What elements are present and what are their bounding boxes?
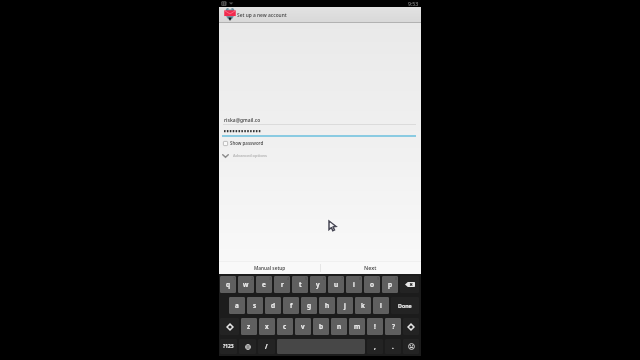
button[interactable]: a <box>229 297 245 314</box>
button[interactable]: g <box>301 297 317 314</box>
button[interactable]: e <box>256 276 272 293</box>
staticText: t <box>299 280 302 289</box>
button[interactable]: n <box>331 318 347 335</box>
staticText: n <box>337 322 342 331</box>
button[interactable]: b <box>313 318 329 335</box>
button[interactable]: . <box>385 339 401 354</box>
staticText: . <box>392 342 394 351</box>
staticText: ? <box>392 322 395 331</box>
staticText: 2 <box>251 276 254 281</box>
staticText: u <box>334 280 339 289</box>
staticText: z <box>247 322 251 331</box>
staticText: q <box>226 280 231 289</box>
staticText: 8 <box>359 276 362 281</box>
button[interactable]: c <box>277 318 293 335</box>
button[interactable]: j <box>337 297 353 314</box>
button[interactable]: Shift <box>220 318 239 335</box>
button[interactable]: d <box>265 297 281 314</box>
staticText: / <box>265 342 268 351</box>
button[interactable]: ? <box>385 318 401 335</box>
button[interactable]: Change language <box>239 339 256 354</box>
button[interactable]: y <box>310 276 326 293</box>
button[interactable]: ?123 <box>220 339 237 354</box>
staticText: l <box>380 301 382 310</box>
button[interactable]: Shift <box>403 318 419 335</box>
button[interactable]: q <box>220 276 236 293</box>
staticText: 9 <box>377 276 380 281</box>
staticText: m <box>354 322 361 331</box>
staticText: h <box>325 301 330 310</box>
staticText: r <box>281 280 284 289</box>
staticText: s <box>253 301 257 310</box>
button[interactable]: Manual setup <box>219 261 320 274</box>
button[interactable]: l <box>373 297 389 314</box>
staticText: y <box>316 280 320 289</box>
staticText: Advanced options <box>233 153 267 158</box>
button[interactable]: ! <box>367 318 383 335</box>
button[interactable]: z <box>241 318 257 335</box>
staticText: w <box>243 280 249 289</box>
button[interactable]: m <box>349 318 365 335</box>
button[interactable]: , <box>367 339 383 354</box>
staticText: x <box>265 322 269 331</box>
staticText: Next <box>364 264 377 271</box>
staticText: Show password <box>230 140 264 146</box>
staticText: 5 <box>305 276 308 281</box>
button[interactable]: v <box>295 318 311 335</box>
staticText: Done <box>398 302 412 309</box>
button[interactable]: f <box>283 297 299 314</box>
button[interactable]: t <box>292 276 308 293</box>
button[interactable]: Backspace <box>400 276 419 293</box>
button[interactable]: Emoji <box>403 339 419 354</box>
staticText: Manual setup <box>254 265 286 271</box>
staticText: riska@gmail.co <box>224 117 261 124</box>
staticText: a <box>235 301 239 310</box>
staticText: ! <box>374 322 376 331</box>
button[interactable]: Next <box>320 261 421 274</box>
staticText: 9:53 <box>408 0 419 7</box>
staticText: , <box>374 342 376 351</box>
staticText: b <box>319 322 324 331</box>
staticText: f <box>290 301 293 310</box>
button[interactable]: Done <box>391 297 419 314</box>
button[interactable]: h <box>319 297 335 314</box>
button[interactable]: w <box>238 276 254 293</box>
button[interactable]: u <box>328 276 344 293</box>
staticText: p <box>388 280 393 289</box>
button[interactable]: k <box>355 297 371 314</box>
staticText: 7 <box>341 276 344 281</box>
staticText: j <box>344 301 346 310</box>
button[interactable]: r <box>274 276 290 293</box>
staticText: 4 <box>287 276 290 281</box>
staticText: i <box>353 280 355 289</box>
button[interactable]: / <box>258 339 275 354</box>
button[interactable]: x <box>259 318 275 335</box>
staticText: c <box>283 322 287 331</box>
staticText: e <box>262 280 266 289</box>
staticText: d <box>271 301 276 310</box>
staticText: Set up a new account <box>237 12 287 19</box>
button[interactable]: s <box>247 297 263 314</box>
button[interactable]: p <box>382 276 398 293</box>
staticText: v <box>301 322 305 331</box>
button[interactable]: o <box>364 276 380 293</box>
button[interactable]: Show password <box>219 139 421 147</box>
button[interactable]: Advanced options <box>219 151 421 160</box>
staticText: o <box>370 280 375 289</box>
staticText: k <box>361 301 365 310</box>
staticText: ?123 <box>223 343 234 350</box>
staticText: 0 <box>395 276 398 281</box>
staticText: 1 <box>233 276 236 281</box>
staticText: 3 <box>269 276 272 281</box>
staticText: 6 <box>323 276 326 281</box>
button[interactable]: i <box>346 276 362 293</box>
staticText: g <box>307 301 312 310</box>
